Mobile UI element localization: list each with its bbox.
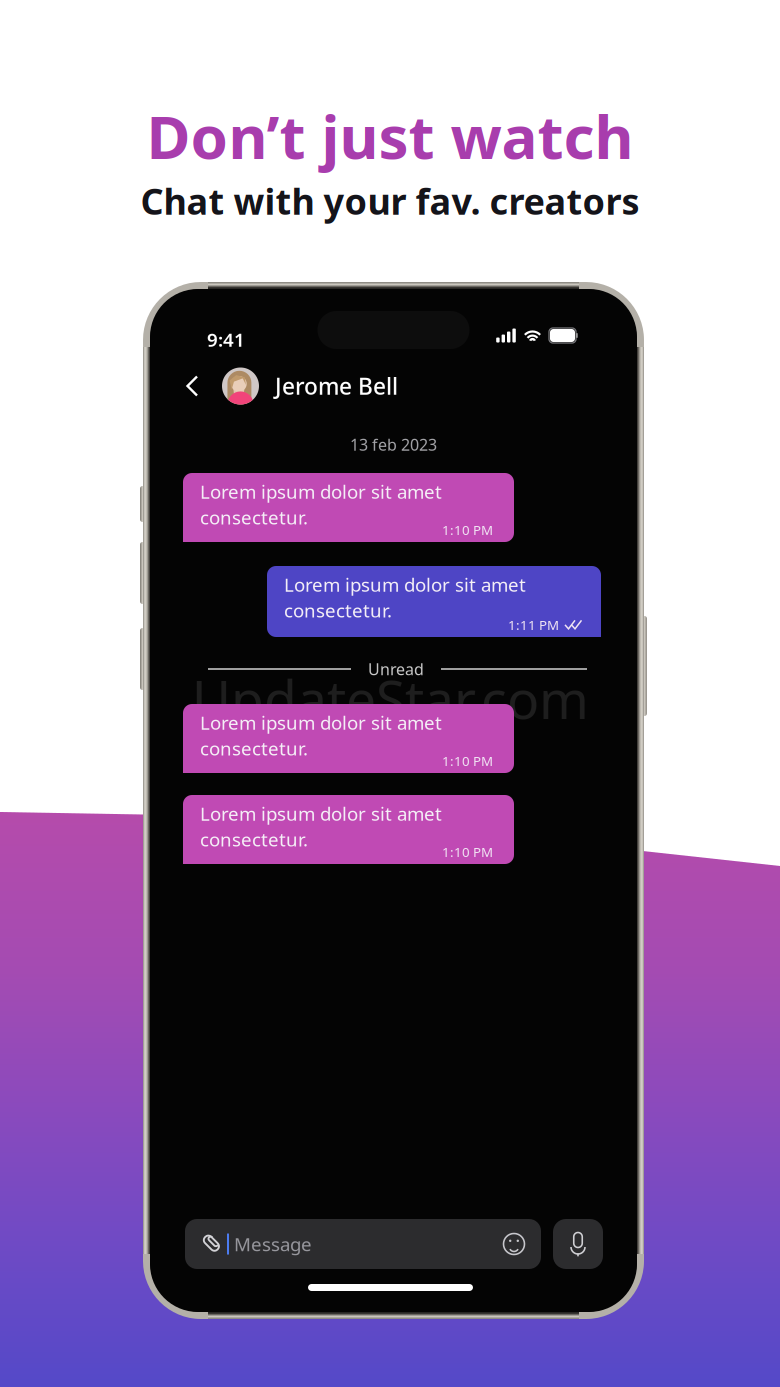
staticText: consectetur. xyxy=(284,598,392,623)
button[interactable]: Back xyxy=(174,366,211,406)
staticText: 13 feb 2023 xyxy=(350,434,437,455)
staticText: Don’t just watch xyxy=(146,96,633,176)
button[interactable]: Jerome Bell xyxy=(222,366,398,406)
staticText: UpdateStar.com xyxy=(192,663,589,734)
staticText: 1:11 PM xyxy=(508,616,559,634)
staticText: consectetur. xyxy=(200,827,308,852)
staticText: Message xyxy=(234,1232,312,1256)
staticText: Lorem ipsum dolor sit amet xyxy=(200,801,442,826)
staticText: 1:10 PM xyxy=(442,521,493,539)
staticText: Lorem ipsum dolor sit amet xyxy=(200,710,442,735)
staticText: Jerome Bell xyxy=(275,371,398,401)
button[interactable]: Record voice message xyxy=(553,1219,603,1269)
staticText: Unread xyxy=(368,658,424,680)
staticText: 1:10 PM xyxy=(442,752,493,770)
staticText: Chat with your fav. creators xyxy=(140,177,639,225)
button[interactable]: Attach file xyxy=(197,1219,227,1269)
staticText: consectetur. xyxy=(200,505,308,530)
staticText: consectetur. xyxy=(200,736,308,761)
staticText: 1:10 PM xyxy=(442,843,493,861)
button[interactable]: Emoji xyxy=(499,1219,529,1269)
staticText: Lorem ipsum dolor sit amet xyxy=(284,572,526,597)
staticText: 9:41 xyxy=(207,327,245,352)
staticText: Lorem ipsum dolor sit amet xyxy=(200,479,442,504)
